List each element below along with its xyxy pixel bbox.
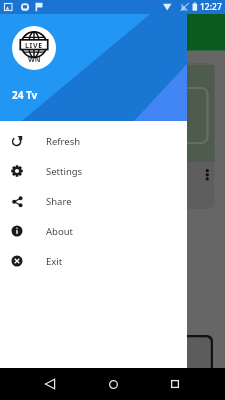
button[interactable]: Refresh [0,126,187,156]
staticText: WN [28,55,41,65]
staticText: 12:27 [200,1,222,13]
button[interactable]: Exit [0,246,187,276]
staticText: LIVE [25,41,43,51]
staticText: Settings [46,165,83,178]
button[interactable]: Share [0,186,187,216]
staticText: Exit [46,255,63,268]
button[interactable]: Recents [163,372,187,396]
staticText: Share [46,195,72,208]
button[interactable]: Back [38,372,62,396]
staticText: About [46,225,73,238]
button[interactable]: About [0,216,187,246]
staticText: Refresh [46,135,81,148]
button[interactable]: Settings [0,156,187,186]
button[interactable]: Home [101,372,125,396]
staticText: 24 Tv [12,88,38,102]
